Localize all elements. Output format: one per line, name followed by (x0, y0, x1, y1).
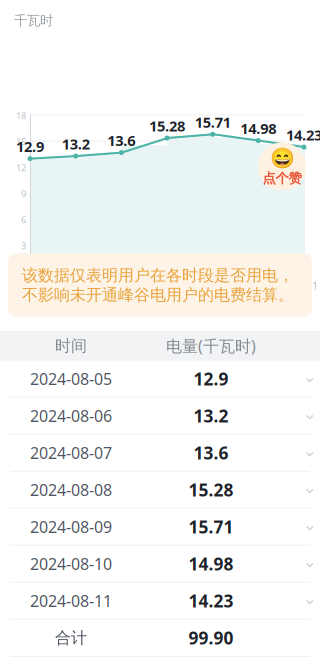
staticText: ⌄ (302, 477, 317, 497)
staticText: 15.28 (188, 478, 233, 501)
staticText: 18 (16, 109, 26, 122)
button[interactable]: Back (0, 0, 40, 42)
staticText: 2024-08-09 (30, 516, 112, 537)
staticText: 99.90 (188, 626, 233, 649)
staticText: 12.9 (193, 367, 228, 390)
button[interactable]: 2024-08-09 (0, 509, 320, 546)
button[interactable]: 2024-08-10 (0, 546, 320, 583)
button[interactable]: 2024-08-07 (0, 435, 320, 472)
staticText: 合计 (55, 628, 87, 648)
staticText: 08/09 (199, 278, 227, 293)
staticText: 2024-08-05 (30, 368, 112, 389)
staticText: 08/06 (62, 278, 90, 293)
staticText: 08/10 (244, 278, 272, 293)
staticText: ⌄ (302, 366, 317, 386)
staticText: 3 (21, 239, 26, 252)
staticText: ⌄ (302, 551, 317, 571)
button[interactable]: 2024-08-06 (0, 398, 320, 435)
staticText: 13.6 (107, 131, 135, 150)
staticText: 14.23 (286, 125, 320, 145)
staticText: 该数据仅表明用户在各时段是否用电，不影响未开通峰谷电用户的电费结算。 (22, 265, 294, 305)
staticText: 13.6 (193, 441, 228, 464)
button[interactable]: 2024-08-05 (0, 361, 320, 398)
staticText: 13.2 (62, 134, 90, 153)
staticText: 08/11 (290, 278, 318, 293)
staticText: ⌄ (302, 440, 317, 460)
staticText: 15.71 (195, 112, 231, 132)
staticText: 08/05 (16, 278, 44, 293)
staticText: 2024-08-10 (30, 553, 112, 574)
staticText: ‹ (12, 0, 23, 43)
staticText: 2024-08-08 (30, 479, 112, 500)
staticText: 电量(千瓦时) (166, 335, 256, 356)
staticText: 14.23 (188, 589, 233, 612)
staticText: 点个赞 (262, 170, 301, 187)
staticText: 14.98 (188, 552, 233, 575)
staticText: 千瓦时 (14, 12, 53, 29)
staticText: 12.9 (16, 137, 44, 156)
staticText: 15.28 (149, 116, 185, 135)
staticText: 08/07 (107, 278, 135, 293)
staticText: 08/08 (153, 278, 181, 293)
staticText: 9 (21, 187, 26, 200)
staticText: 😄 (269, 146, 294, 169)
button[interactable]: 😄 (258, 142, 306, 190)
staticText: 时间 (55, 336, 87, 356)
staticText: 0 (21, 265, 26, 278)
staticText: 12 (16, 161, 26, 174)
button[interactable]: 2024-08-11 (0, 583, 320, 620)
staticText: 15 (16, 135, 26, 148)
staticText: 6 (21, 213, 26, 226)
button[interactable]: 2024-08-08 (0, 472, 320, 509)
button[interactable]: 合计 (0, 620, 320, 657)
staticText: 2024-08-11 (30, 590, 112, 611)
staticText: ⌄ (302, 403, 317, 423)
staticText: 2024-08-07 (30, 442, 112, 463)
staticText: ⌄ (302, 588, 317, 608)
staticText: ⌄ (302, 514, 317, 534)
staticText: 15.71 (188, 515, 233, 538)
staticText: 13.2 (193, 404, 228, 427)
staticText: 2024-08-06 (30, 405, 112, 426)
staticText: 14.98 (240, 119, 276, 138)
